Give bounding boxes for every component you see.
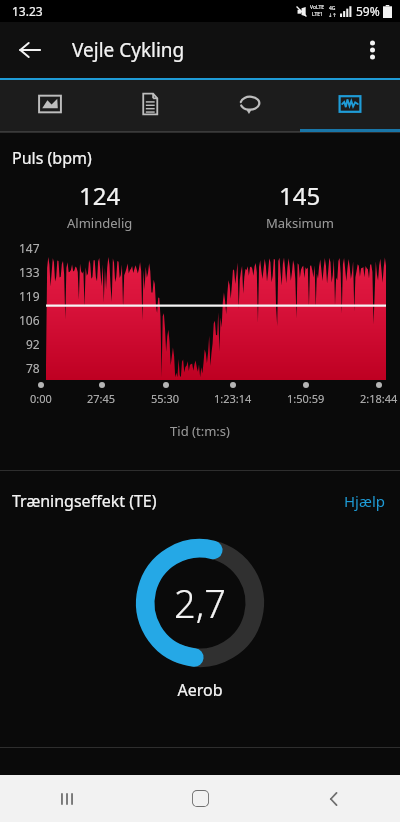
- staticText: 27:45: [87, 391, 116, 406]
- staticText: 0:00: [30, 391, 52, 406]
- staticText: 124: [79, 179, 121, 212]
- staticText: 1:23:14: [214, 391, 252, 406]
- staticText: Puls (bpm): [12, 147, 92, 169]
- staticText: 2:18:44: [360, 391, 398, 406]
- staticText: Aerob: [0, 679, 400, 701]
- button[interactable]: Back: [8, 28, 52, 72]
- staticText: 78: [26, 360, 40, 376]
- staticText: 59%: [356, 3, 380, 19]
- staticText: 1:50:59: [287, 391, 325, 406]
- staticText: Maksimum: [266, 214, 334, 232]
- staticText: ↓↑: [328, 12, 337, 18]
- staticText: VoLTE: [310, 4, 325, 11]
- button[interactable]: Home: [134, 775, 267, 822]
- button[interactable]: Laps tab: [200, 80, 300, 132]
- button[interactable]: Recent apps: [0, 775, 134, 822]
- staticText: 145: [279, 179, 321, 212]
- button[interactable]: Charts tab: [300, 80, 400, 132]
- staticText: 133: [19, 264, 40, 280]
- staticText: 4G: [329, 5, 336, 12]
- staticText: Tid (t:m:s): [0, 422, 400, 440]
- button[interactable]: Back: [267, 775, 400, 822]
- button[interactable]: Hjælp: [330, 485, 400, 517]
- staticText: Almindelig: [67, 214, 133, 232]
- button[interactable]: Map tab: [0, 80, 100, 132]
- staticText: 119: [19, 288, 40, 304]
- staticText: 92: [26, 336, 40, 352]
- button[interactable]: Details tab: [100, 80, 200, 132]
- staticText: 13.23: [12, 3, 43, 19]
- staticText: LTE1: [312, 11, 323, 18]
- staticText: Træningseffekt (TE): [12, 490, 330, 512]
- staticText: Hjælp: [344, 491, 386, 511]
- staticText: 147: [19, 240, 40, 256]
- staticText: Vejle Cykling: [72, 37, 185, 63]
- staticText: 55:30: [151, 391, 180, 406]
- button[interactable]: More options: [350, 28, 394, 72]
- staticText: 2,7: [174, 577, 226, 629]
- staticText: 106: [19, 312, 40, 328]
